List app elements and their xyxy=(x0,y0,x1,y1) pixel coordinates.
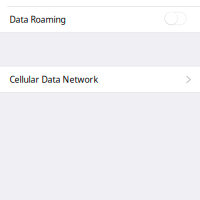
button[interactable]: Cellular Data Network xyxy=(0,67,200,92)
staticText: Data Roaming xyxy=(9,14,65,25)
button[interactable]: Data Roaming xyxy=(0,7,200,32)
staticText: Cellular Data Network xyxy=(9,74,98,85)
